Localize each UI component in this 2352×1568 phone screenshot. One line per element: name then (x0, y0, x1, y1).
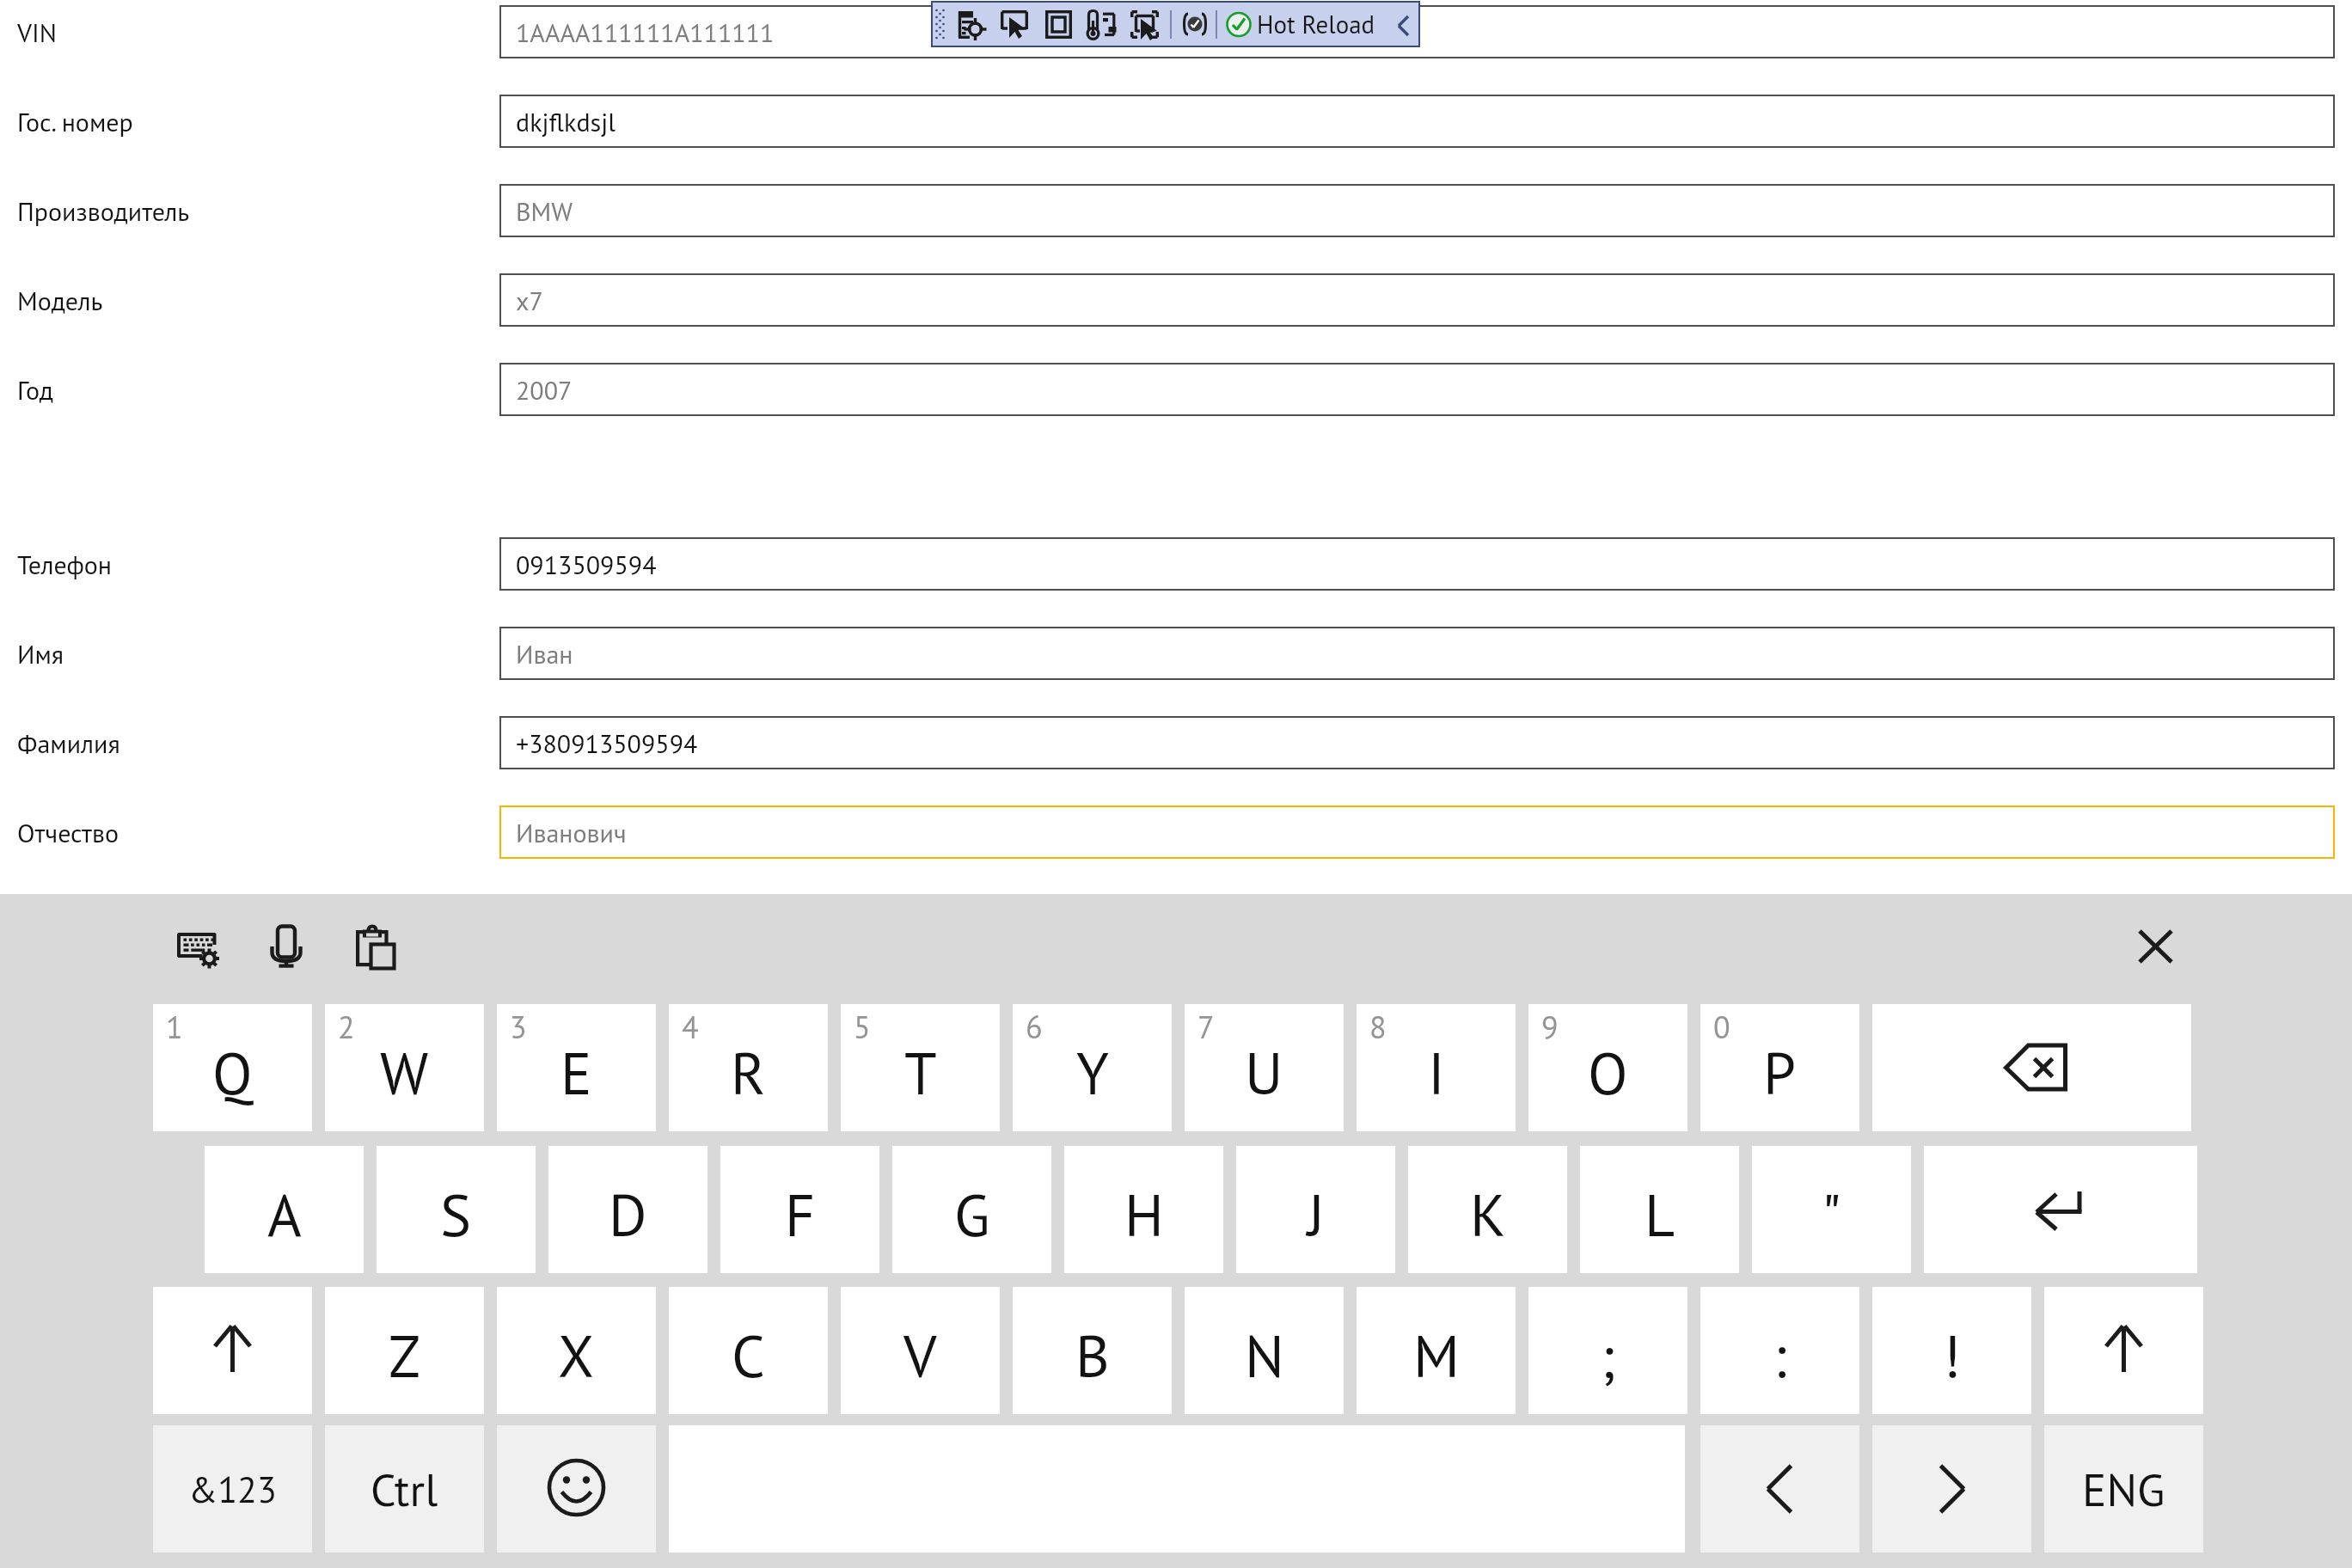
button[interactable]: B (1013, 1287, 1172, 1414)
staticText: 8 (1369, 1007, 1387, 1047)
staticText: L (1645, 1177, 1675, 1253)
button[interactable]: Clipboard (356, 925, 397, 968)
button[interactable]: Иван (499, 627, 2335, 680)
staticText: ! (1943, 1318, 1961, 1393)
staticText: Производитель (17, 194, 190, 228)
staticText: 2007 (516, 373, 573, 407)
button[interactable]: 2007 (499, 363, 2335, 416)
button[interactable]: Show bounds (1045, 10, 1072, 39)
button[interactable]: Keyboard settings (173, 930, 223, 970)
button[interactable]: V (841, 1287, 1000, 1414)
staticText: P (1763, 1035, 1797, 1111)
button[interactable]: +380913509594 (499, 716, 2335, 769)
button[interactable]: ! (1872, 1287, 2031, 1414)
button[interactable]: 7 (1185, 1004, 1344, 1131)
button[interactable]: Close keyboard (2140, 931, 2171, 962)
staticText: Телефон (17, 548, 113, 581)
button[interactable]: : (1700, 1287, 1859, 1414)
button[interactable]: dkjflkdsjl (499, 95, 2335, 148)
button[interactable]: Cursor left (1700, 1425, 1859, 1553)
button[interactable]: Cursor right (1872, 1425, 2031, 1553)
staticText: B (1075, 1318, 1110, 1393)
button[interactable]: S (377, 1146, 536, 1273)
button[interactable]: Space (669, 1425, 1685, 1553)
staticText: E (560, 1035, 592, 1111)
button[interactable]: Emoji (497, 1425, 656, 1553)
staticText: +380913509594 (516, 726, 698, 760)
staticText: Y (1076, 1035, 1109, 1111)
staticText: Ctrl (371, 1461, 438, 1518)
button[interactable]: J (1236, 1146, 1395, 1273)
staticText: V (903, 1318, 937, 1393)
button[interactable]: G (892, 1146, 1051, 1273)
staticText: X (558, 1318, 595, 1393)
button[interactable]: Иванович (499, 805, 2335, 859)
button[interactable]: 9 (1528, 1004, 1687, 1131)
button[interactable]: C (669, 1287, 828, 1414)
staticText: 3 (510, 1007, 527, 1047)
button[interactable]: " (1752, 1146, 1911, 1273)
staticText: Z (389, 1318, 421, 1393)
staticText: R (731, 1035, 766, 1111)
button[interactable]: 3 (497, 1004, 656, 1131)
button[interactable]: Inspect composables (958, 10, 984, 39)
button[interactable]: 8 (1357, 1004, 1516, 1131)
button[interactable]: H (1064, 1146, 1223, 1273)
button[interactable]: 1AAAA111111A111111 (499, 5, 2335, 58)
button[interactable]: L (1580, 1146, 1739, 1273)
button[interactable]: F (720, 1146, 879, 1273)
staticText: W (380, 1035, 429, 1111)
button[interactable]: Collapse (1398, 16, 1412, 35)
button[interactable]: 6 (1013, 1004, 1172, 1131)
button[interactable]: Performance (1088, 10, 1116, 39)
button[interactable]: Hot reload status (1226, 12, 1252, 37)
staticText: Иван (516, 637, 573, 671)
button[interactable]: ; (1528, 1287, 1687, 1414)
button[interactable]: Z (325, 1287, 484, 1414)
button[interactable]: D (548, 1146, 707, 1273)
button[interactable]: BMW (499, 184, 2335, 237)
staticText: 6 (1026, 1007, 1043, 1047)
staticText: dkjflkdsjl (516, 105, 616, 138)
staticText: M (1413, 1318, 1460, 1393)
button[interactable]: Pick element (1130, 10, 1159, 39)
staticText: K (1470, 1177, 1506, 1253)
staticText: J (1308, 1177, 1325, 1253)
button[interactable]: x7 (499, 273, 2335, 327)
staticText: Hot Reload (1257, 8, 1375, 40)
button[interactable]: K (1408, 1146, 1567, 1273)
staticText: 5 (854, 1007, 871, 1047)
staticText: " (1822, 1177, 1841, 1253)
button[interactable]: Shift (153, 1287, 312, 1414)
staticText: x7 (516, 284, 543, 317)
button[interactable]: ENG (2044, 1425, 2203, 1553)
button[interactable]: 1 (153, 1004, 312, 1131)
button[interactable]: 0 (1700, 1004, 1859, 1131)
button[interactable]: 5 (841, 1004, 1000, 1131)
button[interactable]: 4 (669, 1004, 828, 1131)
button[interactable]: 0913509594 (499, 537, 2335, 591)
button[interactable]: M (1357, 1287, 1516, 1414)
staticText: &123 (188, 1466, 277, 1512)
staticText: O (1588, 1035, 1628, 1111)
staticText: A (267, 1177, 302, 1253)
button[interactable]: A (205, 1146, 364, 1273)
staticText: VIN (17, 15, 57, 49)
staticText: 0 (1713, 1007, 1730, 1047)
button[interactable]: Backspace (1872, 1004, 2191, 1131)
staticText: G (954, 1177, 990, 1253)
button[interactable]: N (1185, 1287, 1344, 1414)
button[interactable]: Voice input (269, 925, 303, 968)
button[interactable]: X (497, 1287, 656, 1414)
button[interactable]: Enter (1924, 1146, 2197, 1273)
button[interactable]: Ctrl (325, 1425, 484, 1553)
button[interactable]: &123 (153, 1425, 312, 1553)
staticText: Отчество (17, 816, 119, 849)
button[interactable]: Annotations (1182, 12, 1208, 36)
button[interactable]: 2 (325, 1004, 484, 1131)
staticText: I (1428, 1035, 1445, 1111)
button[interactable]: Select element (1001, 10, 1028, 39)
staticText: 2 (338, 1007, 355, 1047)
button[interactable]: Shift (2044, 1287, 2203, 1414)
staticText: S (440, 1177, 472, 1253)
